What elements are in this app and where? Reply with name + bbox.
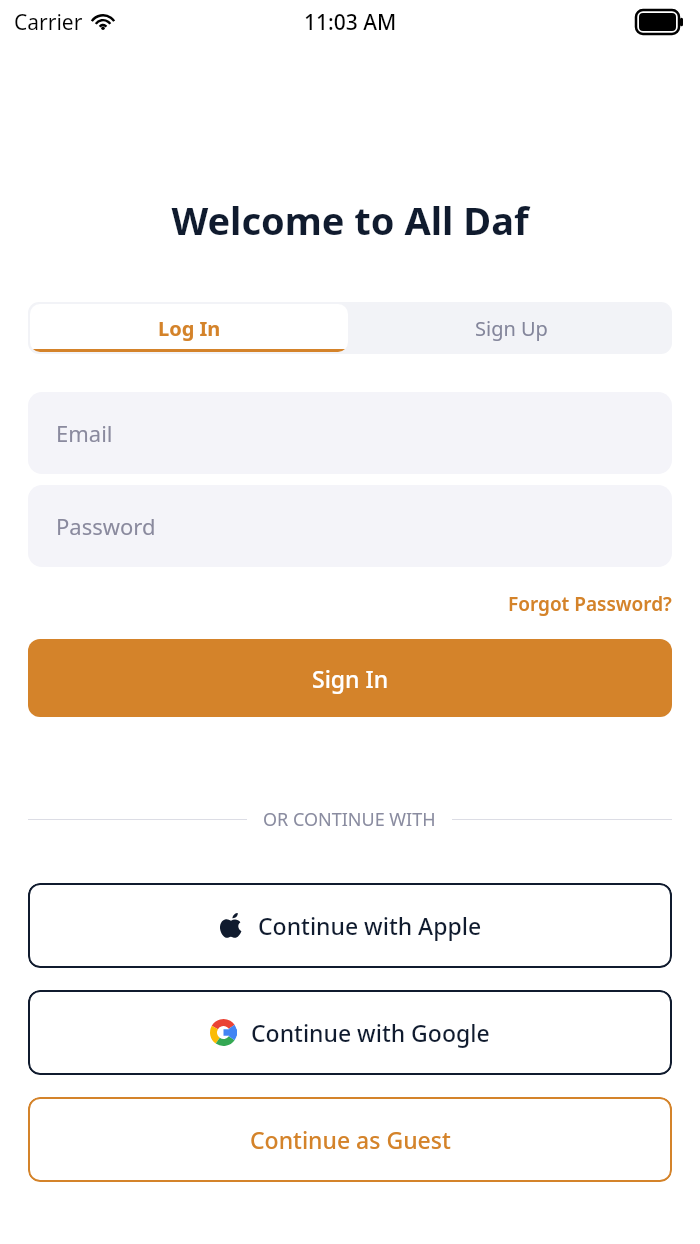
- staticText: Continue with Apple: [258, 910, 482, 941]
- button[interactable]: Apple: [28, 883, 672, 968]
- staticText: Sign Up: [475, 315, 548, 342]
- button[interactable]: Password: [28, 485, 672, 567]
- staticText: Welcome to All Daf: [0, 194, 700, 246]
- button[interactable]: Sign In: [28, 639, 672, 717]
- button[interactable]: Continue as Guest: [28, 1097, 672, 1182]
- staticText: Continue as Guest: [250, 1124, 451, 1155]
- button[interactable]: Google: [28, 990, 672, 1075]
- button[interactable]: Forgot Password?: [508, 587, 672, 621]
- staticText: Password: [56, 511, 156, 541]
- other: Apple: [218, 913, 244, 939]
- button[interactable]: Email: [28, 392, 672, 474]
- button[interactable]: Sign Up: [350, 302, 672, 354]
- staticText: Email: [56, 418, 113, 448]
- staticText: OR CONTINUE WITH: [263, 807, 436, 832]
- staticText: 11:03 AM: [304, 8, 397, 37]
- staticText: Sign In: [312, 663, 389, 694]
- button[interactable]: Log In: [30, 304, 348, 352]
- staticText: Carrier: [14, 8, 83, 37]
- staticText: Log In: [158, 315, 221, 342]
- staticText: Continue with Google: [251, 1017, 490, 1048]
- other: Google: [210, 1019, 237, 1046]
